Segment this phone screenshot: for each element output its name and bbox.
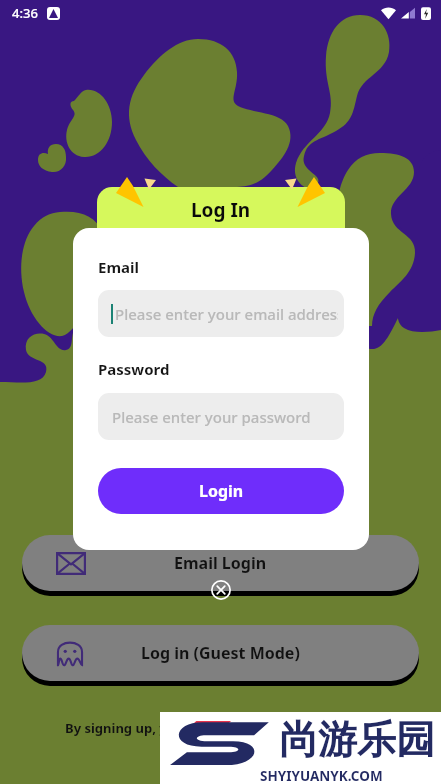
staticText: 尚游乐园 <box>279 715 435 764</box>
staticText: 4:36 <box>12 4 38 22</box>
button[interactable]: Close <box>211 580 231 600</box>
button[interactable]: Please enter your email address <box>98 290 344 337</box>
button[interactable]: Please enter your password <box>98 393 344 440</box>
staticText: Login <box>199 480 244 502</box>
staticText: SHYIYUANYK.COM <box>260 767 383 784</box>
button[interactable]: Log in (Guest Mode) <box>22 625 419 681</box>
button[interactable]: Login <box>98 468 344 514</box>
button[interactable]: Email Login <box>22 535 419 591</box>
staticText: Please enter your password <box>112 407 311 427</box>
staticText: Log In <box>191 197 251 223</box>
staticText: Email Login <box>174 552 267 574</box>
staticText: Password <box>98 359 170 379</box>
staticText: Email <box>98 257 139 277</box>
staticText: Please enter your email address <box>115 304 338 324</box>
staticText: Log in (Guest Mode) <box>141 642 300 664</box>
staticText: By signing up, you agree to the Terms of… <box>65 719 376 737</box>
